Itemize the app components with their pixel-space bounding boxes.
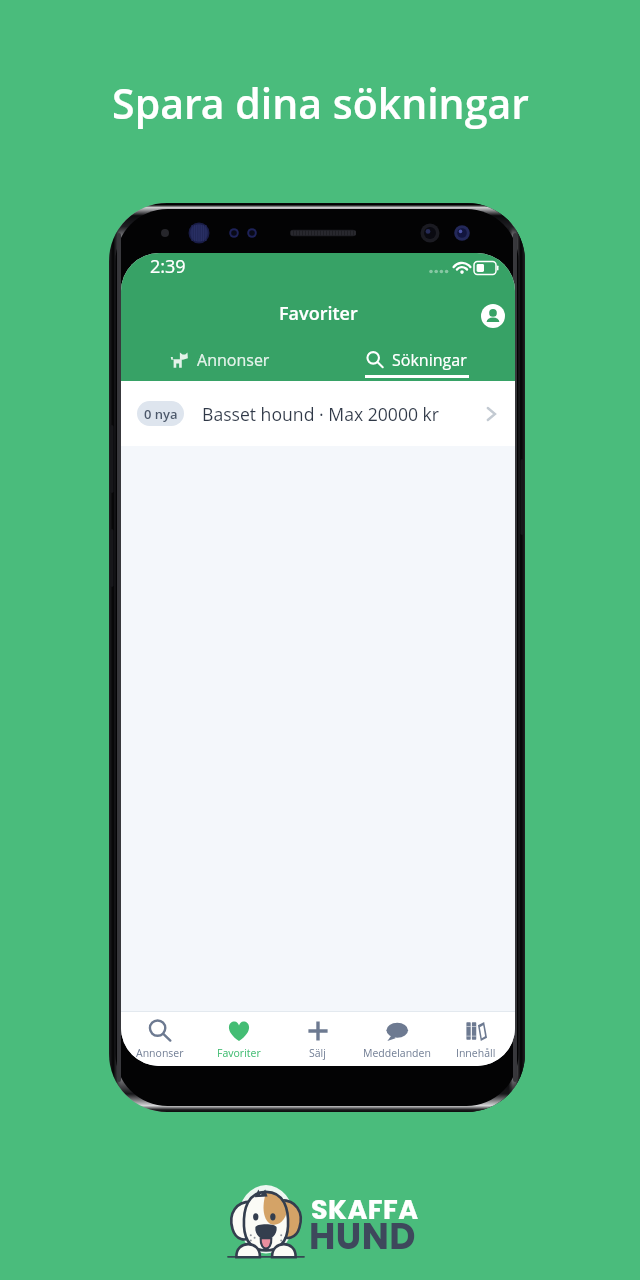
staticText: SKAFFA <box>311 1191 419 1229</box>
button[interactable]: 0 nya <box>121 381 515 446</box>
button[interactable]: Sökningar <box>318 339 515 381</box>
staticText: Favoriter <box>279 301 358 326</box>
button[interactable]: Annonser <box>121 339 318 381</box>
staticText: Meddelanden <box>363 1046 431 1060</box>
button[interactable]: Sälj <box>278 1012 357 1066</box>
button[interactable]: Meddelanden <box>357 1012 436 1066</box>
staticText: HUND <box>309 1211 416 1261</box>
staticText: Spara dina sökningar <box>112 75 529 131</box>
staticText: Basset hound · Max 20000 kr <box>202 402 439 426</box>
staticText: Favoriter <box>217 1046 261 1060</box>
staticText: 2:39 <box>150 254 186 279</box>
button[interactable]: Favoriter <box>199 1012 278 1066</box>
button[interactable]: Annonser <box>121 1012 199 1066</box>
button[interactable]: Account <box>474 297 512 335</box>
staticText: Sälj <box>309 1046 326 1060</box>
button[interactable]: Innehåll <box>436 1012 515 1066</box>
staticText: Annonser <box>197 349 270 371</box>
staticText: Annonser <box>136 1046 184 1060</box>
staticText: 0 nya <box>144 405 178 423</box>
staticText: Innehåll <box>456 1046 496 1060</box>
staticText: Sökningar <box>392 349 467 371</box>
